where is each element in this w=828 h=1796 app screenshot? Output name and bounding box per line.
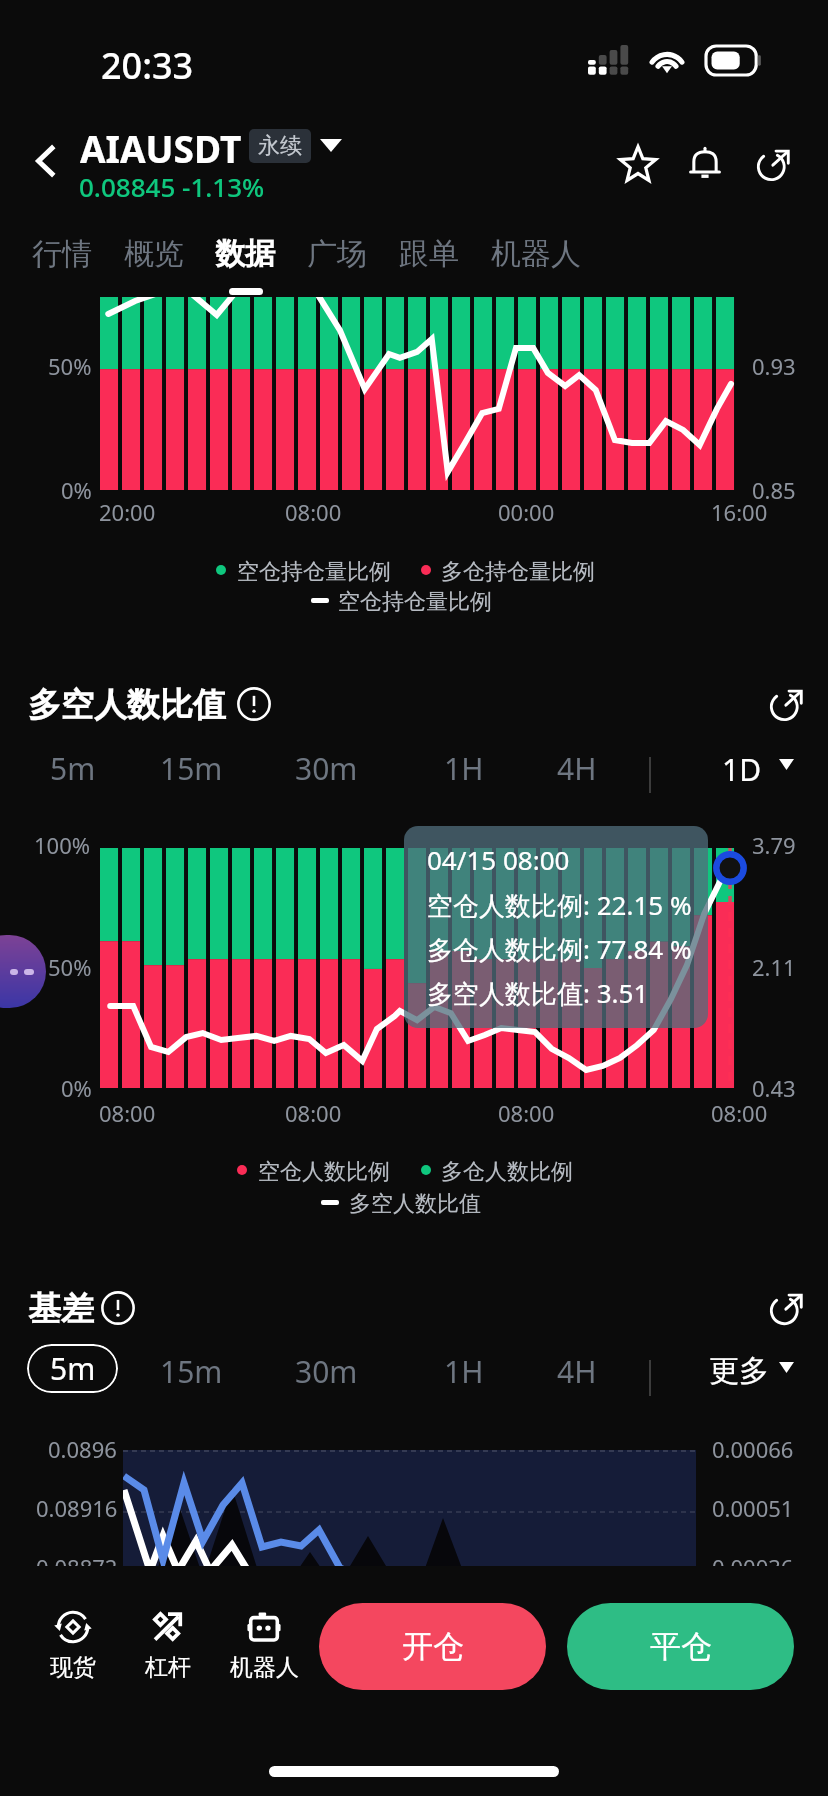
staticText: 3.79 <box>752 830 796 860</box>
staticText: 30m <box>295 1351 358 1392</box>
button[interactable]: Share <box>741 131 807 197</box>
button[interactable]: 更多 <box>700 1341 810 1397</box>
staticText: 04/15 08:00 <box>427 842 570 877</box>
button[interactable]: 15m <box>144 740 238 796</box>
staticText: 15m <box>160 1351 223 1392</box>
staticText: 50% <box>48 952 92 982</box>
staticText: 多仓人数比例: 77.84 % <box>427 931 692 967</box>
button[interactable]: 平仓 <box>567 1603 794 1690</box>
staticText: 0.43 <box>752 1073 796 1103</box>
staticText: 0.85 <box>752 475 796 505</box>
button[interactable]: 15m <box>144 1343 238 1399</box>
staticText: 4H <box>557 748 597 789</box>
staticText: 杠杆 <box>145 1653 191 1682</box>
staticText: 多仓持仓量比例 <box>441 558 595 586</box>
button[interactable]: 30m <box>279 740 373 796</box>
button[interactable]: 行情 <box>18 226 108 296</box>
staticText: 平仓 <box>650 1627 712 1666</box>
button[interactable]: 4H <box>530 740 624 796</box>
staticText: 空仓持仓量比例 <box>237 558 391 586</box>
button[interactable]: 数据 <box>201 226 291 296</box>
button[interactable]: 机器人 <box>214 1598 314 1698</box>
staticText: 50% <box>48 351 92 381</box>
staticText: 08:00 <box>99 1098 156 1128</box>
button[interactable]: 机器人 <box>477 226 598 296</box>
staticText: 08:00 <box>285 497 342 527</box>
staticText: 0.00036 <box>712 1552 794 1582</box>
button[interactable]: Expand chart <box>758 1279 816 1337</box>
staticText: 0.08845 -1.13% <box>79 169 265 204</box>
staticText: 机器人 <box>230 1653 299 1682</box>
button[interactable]: 5m <box>26 740 120 796</box>
button[interactable]: 杠杆 <box>118 1598 218 1698</box>
staticText: 1D <box>722 749 762 790</box>
staticText: 5m <box>50 1348 96 1389</box>
staticText: 08:00 <box>711 1098 768 1128</box>
staticText: 20:00 <box>99 497 156 527</box>
staticText: 多空人数比值: 3.51 <box>427 975 649 1011</box>
button[interactable]: 跟单 <box>385 226 475 296</box>
button[interactable]: Floating assistant <box>0 935 46 1008</box>
staticText: 现货 <box>50 1653 96 1682</box>
staticText: 0% <box>61 1073 92 1103</box>
staticText: 0% <box>61 475 92 505</box>
staticText: 30m <box>295 748 358 789</box>
staticText: 0.0896 <box>48 1434 117 1464</box>
button[interactable]: 1H <box>417 1343 511 1399</box>
button[interactable]: 概览 <box>110 226 200 296</box>
staticText: 20:33 <box>101 41 194 90</box>
staticText: 机器人 <box>491 235 581 273</box>
button[interactable]: 现货 <box>23 1598 123 1698</box>
staticText: 1H <box>444 1351 484 1392</box>
staticText: 2.11 <box>752 952 796 982</box>
staticText: 0.08872 <box>36 1552 118 1582</box>
staticText: 多仓人数比例 <box>441 1158 573 1186</box>
staticText: 4H <box>557 1351 597 1392</box>
staticText: 08:00 <box>498 1098 555 1128</box>
staticText: 开仓 <box>402 1627 464 1666</box>
staticText: AIAUSDT <box>80 123 242 173</box>
staticText: 广场 <box>307 235 367 273</box>
button[interactable]: 1H <box>417 740 511 796</box>
button[interactable]: 开仓 <box>319 1603 546 1690</box>
staticText: 5m <box>50 748 96 789</box>
staticText: 0.93 <box>752 351 796 381</box>
staticText: 1H <box>444 748 484 789</box>
button[interactable]: 广场 <box>293 226 383 296</box>
staticText: 基差 <box>28 1288 94 1330</box>
staticText: 100% <box>34 830 91 860</box>
staticText: 16:00 <box>711 497 768 527</box>
staticText: 0.00051 <box>712 1493 794 1523</box>
button[interactable]: Alerts <box>672 131 738 197</box>
button[interactable]: Expand chart <box>758 675 816 733</box>
staticText: 空仓持仓量比例 <box>338 588 492 616</box>
staticText: 空仓人数比例 <box>258 1158 390 1186</box>
button[interactable]: 4H <box>530 1343 624 1399</box>
button[interactable]: 1D <box>700 738 810 794</box>
staticText: 15m <box>160 748 223 789</box>
staticText: 0.00066 <box>712 1434 794 1464</box>
button[interactable]: Back <box>14 128 80 194</box>
staticText: 08:00 <box>285 1098 342 1128</box>
button[interactable]: 5m <box>27 1344 118 1393</box>
staticText: 概览 <box>124 235 184 273</box>
staticText: 00:00 <box>498 497 555 527</box>
staticText: 空仓人数比例: 22.15 % <box>427 887 692 923</box>
staticText: 更多 <box>709 1352 769 1390</box>
staticText: 0.08916 <box>36 1493 118 1523</box>
staticText: 多空人数比值 <box>349 1190 481 1218</box>
button[interactable]: 30m <box>279 1343 373 1399</box>
staticText: 永续 <box>258 132 302 160</box>
button[interactable]: Favorite <box>605 131 671 197</box>
staticText: 行情 <box>32 235 92 273</box>
staticText: 多空人数比值 <box>28 684 226 726</box>
staticText: 跟单 <box>399 235 459 273</box>
staticText: 数据 <box>215 235 275 273</box>
